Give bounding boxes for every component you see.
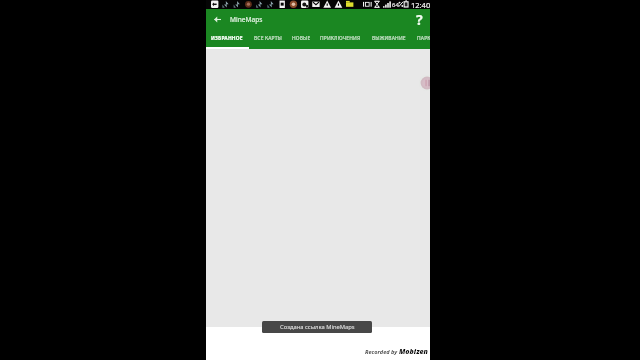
button[interactable]: ВЫЖИВАНИЕ <box>368 30 410 47</box>
button[interactable]: ВСЕ КАРТЫ <box>248 30 288 47</box>
staticText: ПРИКЛЮЧЕНИЯ <box>320 35 361 42</box>
button[interactable]: НОВЫЕ <box>287 30 316 47</box>
button[interactable]: ИЗБРАННОЕ <box>208 30 246 47</box>
button[interactable]: Recorder <box>419 75 430 91</box>
staticText: Recorded by <box>365 348 399 356</box>
staticText: ВЫЖИВАНИЕ <box>372 35 406 42</box>
staticText: Создана ссылка MineMaps <box>280 323 355 331</box>
button[interactable]: ПРИКЛЮЧЕНИЯ <box>317 30 364 47</box>
staticText: Mobizen <box>399 347 428 357</box>
button[interactable]: ПАРК <box>410 30 430 47</box>
button[interactable]: Создана ссылка MineMaps <box>262 321 372 333</box>
staticText: ПАРК <box>417 35 430 42</box>
staticText: ИЗБРАННОЕ <box>211 35 243 42</box>
staticText: 64 <box>392 1 399 9</box>
button[interactable]: Back <box>208 9 227 30</box>
staticText: 12:40 <box>411 0 430 9</box>
button[interactable]: Help <box>409 9 429 30</box>
staticText: НОВЫЕ <box>292 35 311 42</box>
staticText: ВСЕ КАРТЫ <box>254 35 283 42</box>
staticText: ? <box>416 10 423 29</box>
staticText: MineMaps <box>230 15 263 24</box>
